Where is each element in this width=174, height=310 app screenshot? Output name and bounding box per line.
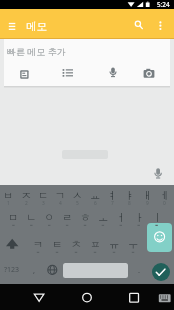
- button[interactable]: [96, 62, 130, 86]
- staticText: 8: [128, 200, 131, 207]
- button[interactable]: [0, 12, 24, 36]
- staticText: ㅏ: [134, 211, 145, 224]
- staticText: 0: [163, 200, 166, 207]
- staticText: 5:24: [157, 0, 170, 9]
- staticText: ㄱ: [55, 189, 66, 202]
- staticText: ㅋ: [33, 238, 44, 251]
- staticText: ㅈ: [21, 189, 32, 202]
- staticText: ㅐ: [142, 189, 153, 202]
- button[interactable]: [152, 263, 170, 281]
- staticText: ㄹ: [62, 211, 73, 224]
- staticText: .: [138, 265, 141, 275]
- staticText: ㅌ: [52, 238, 63, 251]
- button[interactable]: [153, 288, 174, 306]
- staticText: ㅓ: [116, 211, 127, 224]
- button[interactable]: [127, 12, 149, 36]
- staticText: ㅡ: [147, 238, 158, 251]
- button[interactable]: [22, 286, 56, 308]
- staticText: ㅔ: [159, 189, 170, 202]
- staticText: ㅎ: [80, 211, 91, 224]
- staticText: ㄷ: [38, 189, 49, 202]
- staticText: ㅁ: [8, 211, 19, 224]
- staticText: ㅕ: [107, 189, 118, 202]
- button[interactable]: [50, 62, 84, 86]
- staticText: 2: [25, 200, 28, 207]
- staticText: 메모: [26, 20, 47, 33]
- staticText: ㅇ: [44, 211, 55, 224]
- staticText: ㅅ: [72, 189, 83, 202]
- staticText: ㅜ: [128, 238, 139, 251]
- staticText: ㅂ: [3, 189, 14, 202]
- button[interactable]: [117, 286, 151, 308]
- button[interactable]: [147, 223, 172, 252]
- staticText: 7: [111, 200, 114, 207]
- button[interactable]: [4, 39, 170, 59]
- staticText: 빠른 메모 추가: [7, 45, 66, 57]
- staticText: ㅠ: [109, 238, 120, 251]
- button[interactable]: [8, 62, 42, 86]
- staticText: 3: [42, 200, 45, 207]
- staticText: ㄴ: [26, 211, 37, 224]
- staticText: 9: [146, 200, 149, 207]
- staticText: ㅊ: [71, 238, 82, 251]
- staticText: 1: [7, 200, 10, 207]
- staticText: ㅗ: [98, 211, 109, 224]
- staticText: ,: [33, 265, 36, 275]
- staticText: 4: [59, 200, 62, 207]
- button[interactable]: [63, 263, 128, 278]
- staticText: ㅑ: [124, 189, 135, 202]
- staticText: ?123: [4, 265, 20, 275]
- staticText: ㅍ: [90, 238, 101, 251]
- staticText: ㅣ: [152, 211, 163, 224]
- button[interactable]: [132, 62, 166, 86]
- staticText: 5: [76, 200, 79, 207]
- button[interactable]: [150, 12, 172, 36]
- staticText: 6: [94, 200, 97, 207]
- button[interactable]: [70, 286, 104, 308]
- staticText: ㅛ: [90, 189, 101, 202]
